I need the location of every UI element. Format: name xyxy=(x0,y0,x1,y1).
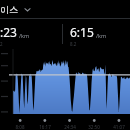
staticText: 32:50 xyxy=(84,124,104,130)
button[interactable] xyxy=(0,49,130,116)
button[interactable]: :23 xyxy=(0,24,62,46)
staticText: 41:07 xyxy=(109,124,129,130)
staticText: :23 xyxy=(0,24,17,40)
other: Expand selection xyxy=(22,4,33,15)
staticText: /km xyxy=(96,32,107,39)
button[interactable]: 이스 xyxy=(0,0,130,18)
staticText: 8:08 xyxy=(10,124,30,130)
staticText: 6:15 xyxy=(70,24,94,40)
staticText: 16:17 xyxy=(35,124,55,130)
button[interactable]: 6:15 xyxy=(63,24,130,46)
staticText: 2 xyxy=(0,41,3,46)
staticText: 8.2 xyxy=(70,41,77,46)
staticText: 이스 xyxy=(0,4,18,15)
staticText: /km xyxy=(19,32,30,39)
staticText: 24:34 xyxy=(60,124,80,130)
